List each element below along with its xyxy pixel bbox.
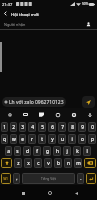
- staticText: p: [91, 136, 94, 143]
- button[interactable]: 2: [10, 122, 17, 132]
- staticText: 2: [12, 124, 15, 131]
- button[interactable]: .: [77, 173, 84, 184]
- button[interactable]: 0: [88, 122, 96, 132]
- staticText: 21:37: [2, 2, 13, 7]
- button[interactable]: x: [24, 158, 32, 168]
- button[interactable]: Lh với zalo 0962710123: [2, 97, 66, 107]
- button[interactable]: 6: [48, 122, 56, 132]
- button[interactable]: o: [78, 134, 86, 144]
- button[interactable]: Sticker: [37, 110, 46, 119]
- staticText: q: [3, 136, 6, 143]
- button[interactable]: Choose contact: [84, 20, 93, 29]
- staticText: 4: [31, 124, 34, 131]
- button[interactable]: 3: [19, 122, 26, 132]
- button[interactable]: s: [14, 146, 21, 156]
- button[interactable]: 1: [1, 122, 8, 132]
- button[interactable]: r: [28, 134, 36, 144]
- button[interactable]: t: [38, 134, 46, 144]
- staticText: v: [47, 160, 50, 167]
- button[interactable]: Voice input: [85, 110, 94, 119]
- button[interactable]: k: [73, 146, 81, 156]
- staticText: 7: [61, 124, 64, 131]
- button[interactable]: Clipboard: [53, 110, 62, 119]
- staticText: b: [57, 160, 60, 167]
- button[interactable]: g: [43, 146, 51, 156]
- button[interactable]: 8: [68, 122, 76, 132]
- staticText: ,: [16, 175, 18, 182]
- button[interactable]: n: [64, 158, 72, 168]
- staticText: h: [56, 148, 59, 155]
- staticText: 1: [3, 124, 6, 131]
- button[interactable]: l: [83, 146, 91, 156]
- button[interactable]: y: [48, 134, 56, 144]
- staticText: y: [51, 136, 54, 143]
- staticText: Người nhận: [4, 22, 26, 27]
- button[interactable]: 4: [28, 122, 36, 132]
- button[interactable]: Emoji: [5, 110, 14, 119]
- button[interactable]: shift: [1, 158, 12, 168]
- button[interactable]: Send: [82, 96, 95, 108]
- button[interactable]: c: [34, 158, 42, 168]
- staticText: a: [7, 148, 10, 155]
- staticText: d: [26, 148, 29, 155]
- staticText: Hội thoại mới: [11, 11, 39, 17]
- staticText: 3: [21, 124, 24, 131]
- button[interactable]: Back: [69, 186, 83, 200]
- staticText: j: [66, 148, 68, 155]
- button[interactable]: Recents: [16, 186, 30, 200]
- staticText: e: [21, 136, 24, 143]
- button[interactable]: u: [58, 134, 66, 144]
- button[interactable]: m: [74, 158, 82, 168]
- button[interactable]: Home: [43, 186, 57, 200]
- button[interactable]: q: [1, 134, 8, 144]
- button[interactable]: 5: [38, 122, 46, 132]
- button[interactable]: f: [33, 146, 41, 156]
- staticText: x: [27, 160, 30, 167]
- button[interactable]: Tiếng Việt: [22, 173, 75, 184]
- staticText: .: [80, 175, 82, 182]
- staticText: Lh với zalo 0962710123: [9, 99, 64, 106]
- staticText: !#1: [3, 176, 9, 181]
- staticText: t: [41, 136, 43, 143]
- staticText: z: [17, 160, 20, 167]
- button[interactable]: enter: [86, 173, 96, 184]
- button[interactable]: del: [84, 158, 96, 168]
- button[interactable]: i: [68, 134, 76, 144]
- staticText: 8: [71, 124, 74, 131]
- staticText: 0: [91, 124, 94, 131]
- button[interactable]: Back: [0, 8, 11, 19]
- button[interactable]: d: [23, 146, 31, 156]
- button[interactable]: 9: [78, 122, 86, 132]
- button[interactable]: a: [5, 146, 12, 156]
- button[interactable]: w: [10, 134, 17, 144]
- staticText: 6: [51, 124, 54, 131]
- staticText: i: [71, 136, 73, 143]
- staticText: 50%: [82, 2, 89, 6]
- button[interactable]: Settings: [69, 110, 78, 119]
- staticText: o: [81, 136, 84, 143]
- staticText: r: [31, 136, 33, 143]
- staticText: u: [61, 136, 64, 143]
- button[interactable]: GIF: [21, 110, 30, 119]
- staticText: 9: [81, 124, 84, 131]
- staticText: m: [76, 160, 81, 167]
- staticText: Tiếng Việt: [41, 177, 56, 181]
- button[interactable]: j: [63, 146, 71, 156]
- staticText: f: [36, 148, 38, 155]
- button[interactable]: z: [14, 158, 22, 168]
- staticText: 5: [41, 124, 44, 131]
- staticText: g: [46, 148, 49, 155]
- button[interactable]: b: [54, 158, 62, 168]
- staticText: s: [16, 148, 19, 155]
- button[interactable]: ,: [13, 173, 20, 184]
- staticText: c: [37, 160, 40, 167]
- staticText: k: [76, 148, 79, 155]
- button[interactable]: v: [44, 158, 52, 168]
- button[interactable]: e: [19, 134, 26, 144]
- button[interactable]: p: [88, 134, 96, 144]
- button[interactable]: sym: [1, 173, 11, 184]
- button[interactable]: h: [53, 146, 61, 156]
- staticText: l: [86, 148, 88, 155]
- button[interactable]: 7: [58, 122, 66, 132]
- staticText: w: [12, 136, 16, 143]
